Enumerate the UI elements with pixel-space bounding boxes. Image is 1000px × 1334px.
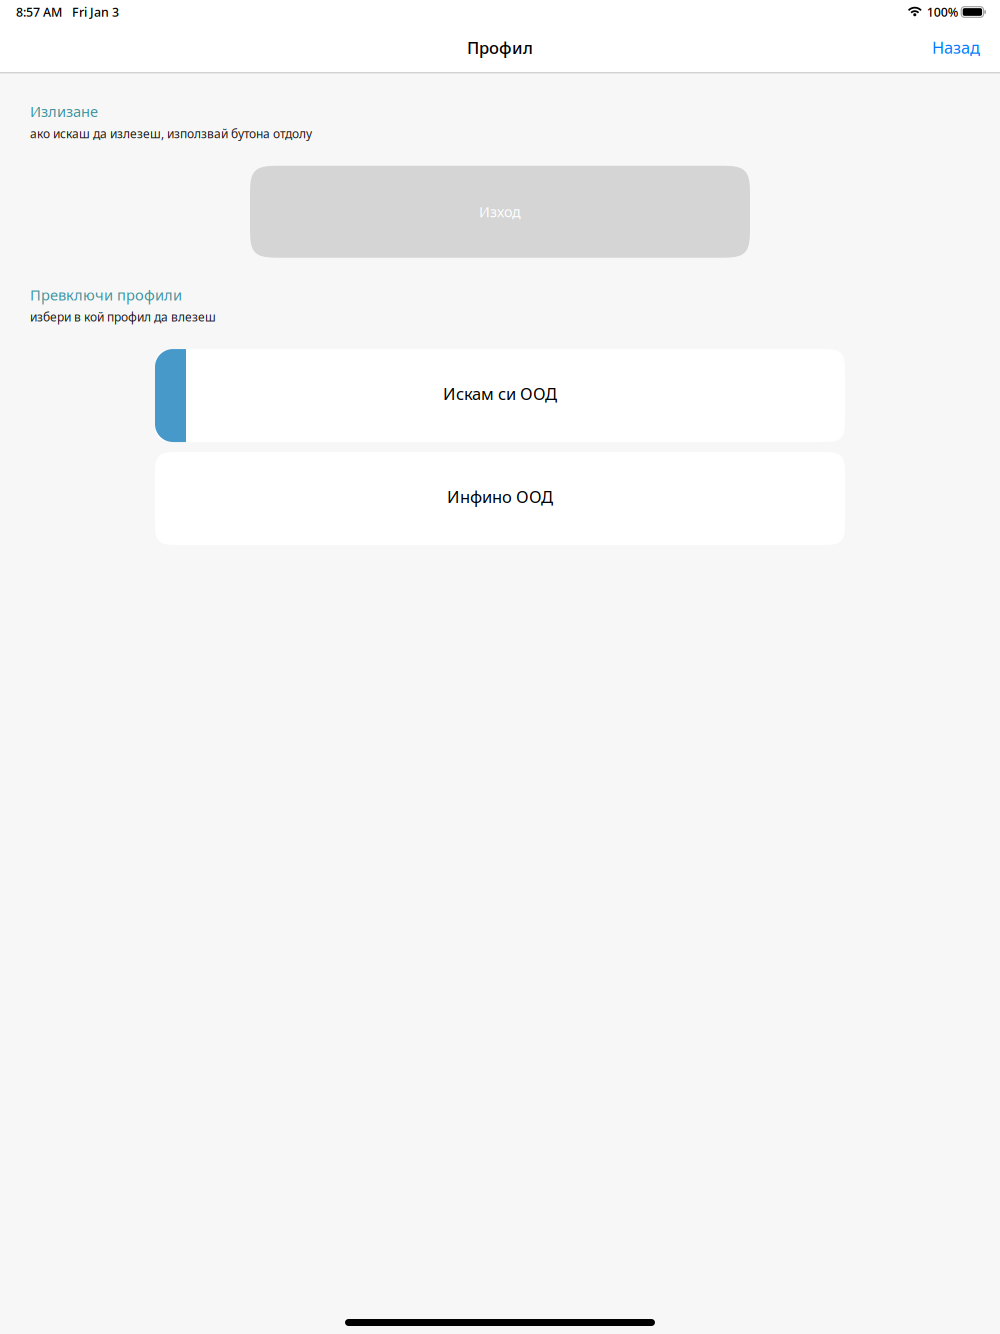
staticText: Профил: [467, 36, 533, 59]
staticText: избери в кой профил да влезеш: [30, 309, 216, 325]
staticText: 100%: [927, 4, 959, 20]
staticText: Назад: [932, 36, 980, 59]
button[interactable]: Назад: [922, 25, 990, 69]
staticText: 8:57 AM: [16, 4, 62, 20]
staticText: Fri Jan 3: [72, 4, 119, 20]
staticText: Излизане: [30, 101, 98, 121]
staticText: Превключи профили: [30, 285, 182, 305]
staticText: Инфино ООД: [447, 485, 553, 508]
button[interactable]: Изход: [250, 166, 750, 258]
staticText: Изход: [479, 202, 521, 221]
button[interactable]: Искам си ООД: [155, 349, 845, 442]
staticText: Искам си ООД: [443, 382, 557, 405]
button[interactable]: Инфино ООД: [155, 452, 845, 545]
staticText: ако искаш да излезеш, използвай бутона о…: [30, 125, 312, 142]
